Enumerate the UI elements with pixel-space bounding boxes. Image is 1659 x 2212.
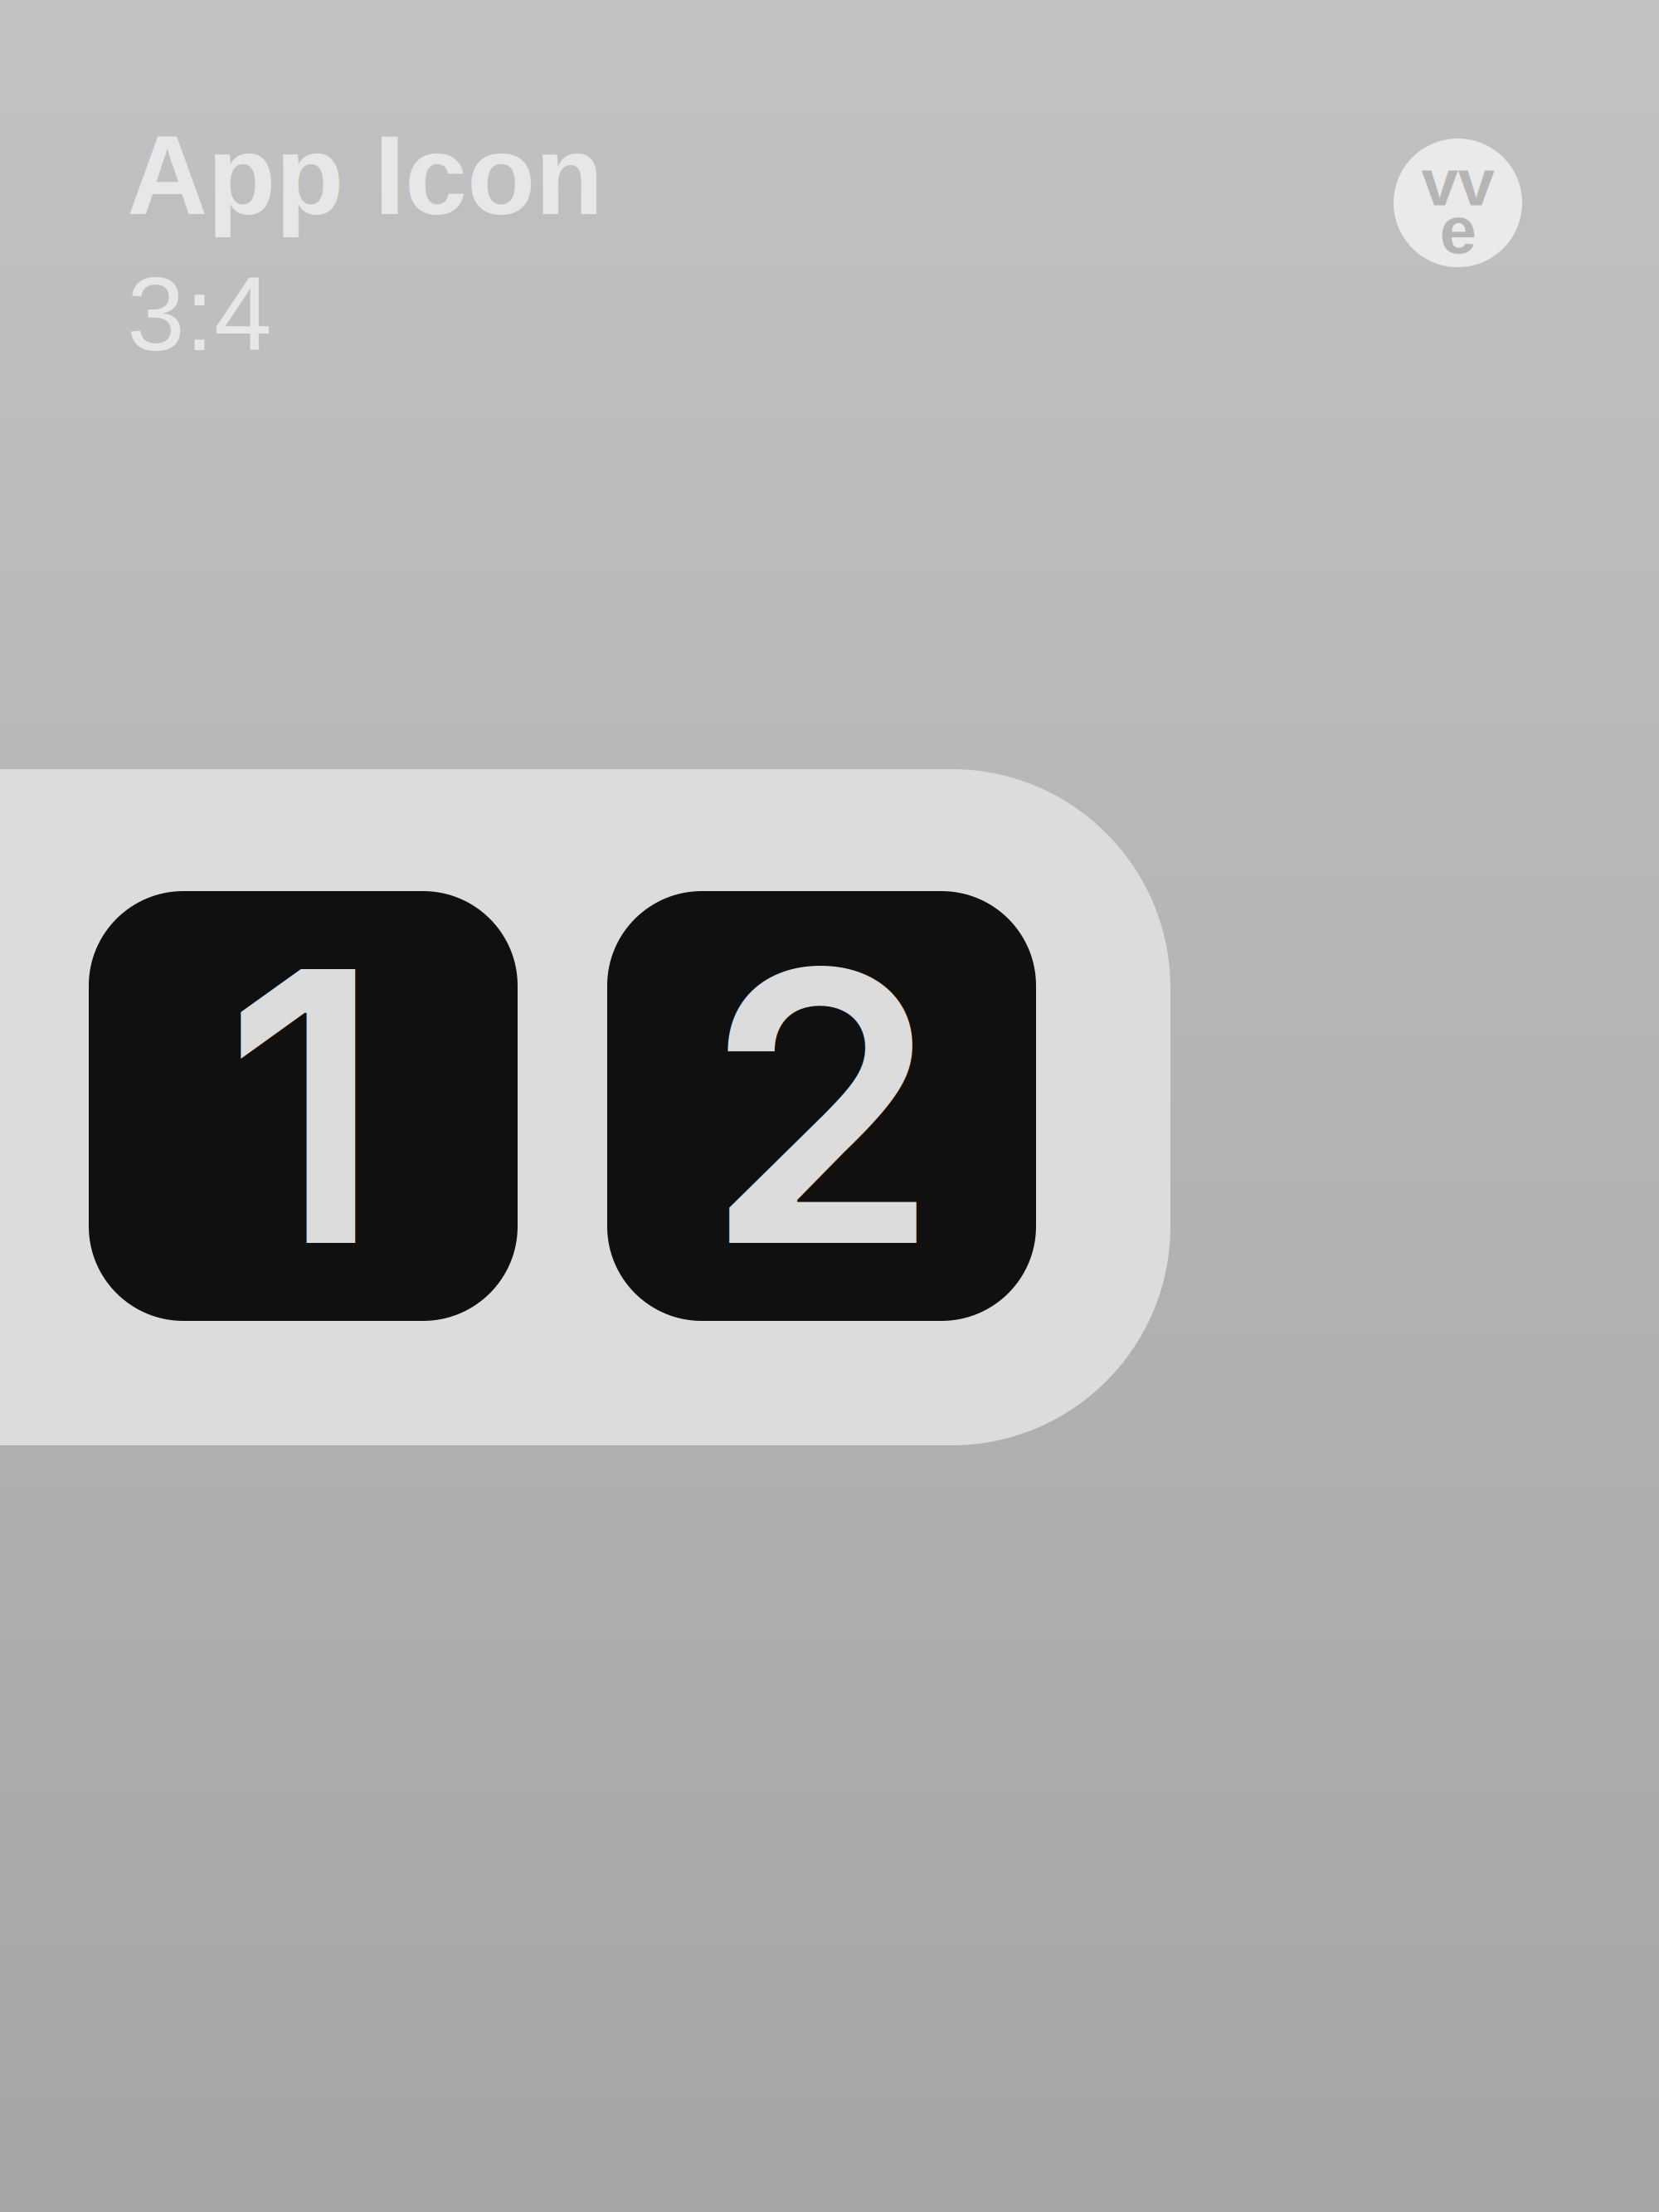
button[interactable]: 1 (89, 891, 518, 1321)
staticText: vv (1421, 145, 1494, 219)
button[interactable]: 2 (607, 891, 1036, 1321)
staticText: 1 (224, 878, 383, 1334)
staticText: 2 (705, 878, 939, 1334)
button[interactable]: Account (1394, 139, 1522, 267)
staticText: App Icon (127, 113, 603, 238)
staticText: 3:4 (127, 256, 272, 372)
staticText: e (1440, 193, 1476, 267)
